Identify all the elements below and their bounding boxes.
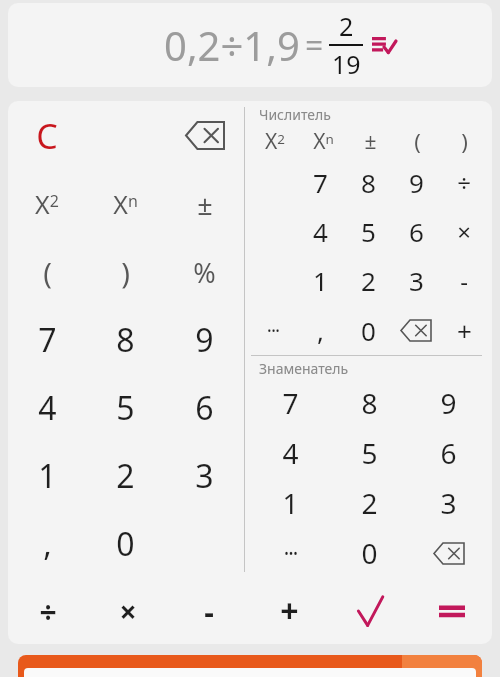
button[interactable]: 0 (330, 528, 409, 578)
button[interactable]: C (8, 101, 86, 170)
staticText: 4 (313, 214, 328, 249)
staticText: 2 (361, 263, 376, 298)
button[interactable]: 5 (344, 207, 392, 256)
button[interactable]: ( (394, 124, 441, 158)
button[interactable]: 4 (251, 428, 330, 478)
button[interactable]: + (249, 578, 330, 644)
button[interactable]: Equals (411, 578, 492, 644)
button[interactable]: 3 (392, 256, 440, 305)
staticText: 8 (361, 384, 378, 422)
button[interactable]: 9 (165, 306, 244, 374)
staticText: ( (43, 253, 52, 292)
button[interactable]: 9 (392, 158, 440, 207)
button[interactable]: × (88, 578, 168, 644)
button[interactable]: 6 (165, 374, 244, 442)
staticText: 3 (195, 454, 214, 498)
staticText: 0 (361, 534, 378, 572)
staticText: 5 (361, 214, 376, 249)
staticText: - (204, 591, 214, 632)
button[interactable]: ) (441, 124, 488, 158)
button[interactable]: Backspace (409, 528, 488, 578)
staticText: 7 (38, 318, 57, 362)
button[interactable]: 0 (86, 510, 165, 578)
staticText: 7 (313, 165, 328, 200)
staticText: ( (414, 126, 421, 156)
button[interactable]: + (440, 305, 488, 355)
staticText: 6 (409, 214, 424, 249)
staticText: X2 (265, 127, 285, 156)
button[interactable]: 8 (344, 158, 392, 207)
staticText: × (457, 215, 471, 248)
staticText: % (193, 254, 216, 291)
staticText: ••• (267, 323, 280, 338)
button[interactable]: 7 (251, 378, 330, 428)
button[interactable]: 1 (251, 478, 330, 528)
button[interactable]: 5 (86, 374, 165, 442)
button[interactable]: 7 (8, 306, 86, 374)
staticText: 5 (116, 386, 135, 430)
button[interactable]: ) (86, 238, 165, 306)
button[interactable]: ••• (251, 305, 296, 355)
button[interactable]: 7 (296, 158, 344, 207)
staticText: 3 (409, 263, 424, 298)
button[interactable]: ••• (251, 528, 330, 578)
button[interactable]: 3 (165, 442, 244, 510)
staticText: = (305, 23, 324, 67)
button[interactable]: 1 (296, 256, 344, 305)
button[interactable]: 4 (296, 207, 344, 256)
button[interactable]: 8 (330, 378, 409, 428)
button[interactable]: 9 (409, 378, 488, 428)
staticText: Числитель (259, 105, 331, 124)
button[interactable]: ± (347, 124, 394, 158)
staticText: 1 (313, 263, 328, 298)
button[interactable]: Show steps (369, 32, 399, 58)
staticText: ) (461, 126, 468, 156)
staticText: 9 (409, 165, 424, 200)
button[interactable]: Xn (299, 124, 347, 158)
button[interactable]: Backspace (392, 305, 440, 355)
button[interactable]: ÷ (440, 158, 488, 207)
button[interactable]: 6 (409, 428, 488, 478)
button[interactable]: Backspace (165, 101, 244, 170)
staticText: × (119, 591, 137, 632)
staticText: 8 (116, 318, 135, 362)
button[interactable]: , (8, 510, 86, 578)
button[interactable]: 3 (409, 478, 488, 528)
staticText: + (280, 589, 299, 633)
staticText: + (457, 313, 472, 348)
button[interactable]: X2 (251, 124, 299, 158)
button[interactable]: - (168, 578, 249, 644)
staticText: Знаменатель (259, 359, 349, 378)
button[interactable]: Xn (86, 170, 165, 238)
staticText: ± (197, 186, 213, 223)
staticText: Xn (113, 187, 138, 221)
button[interactable]: % (165, 238, 244, 306)
button[interactable]: ÷ (8, 578, 88, 644)
staticText: 2 (339, 9, 354, 43)
staticText: 0 (361, 313, 376, 348)
button[interactable]: - (440, 256, 488, 305)
button[interactable]: 0 (344, 305, 392, 355)
button[interactable]: ± (165, 170, 244, 238)
button[interactable]: , (296, 305, 344, 355)
staticText: 3 (440, 484, 457, 522)
button[interactable]: Square root (330, 578, 411, 644)
button[interactable]: 1 (8, 442, 86, 510)
button[interactable]: 8 (86, 306, 165, 374)
staticText: 9 (195, 318, 214, 362)
staticText: 19 (332, 47, 361, 81)
staticText: 8 (361, 165, 376, 200)
button[interactable]: 5 (330, 428, 409, 478)
button[interactable]: 2 (330, 478, 409, 528)
button[interactable]: 6 (392, 207, 440, 256)
staticText: 2 (361, 484, 378, 522)
button[interactable]: × (440, 207, 488, 256)
staticText: Xn (313, 127, 334, 156)
button[interactable]: 2 (86, 442, 165, 510)
staticText: 0,2÷1,9 (164, 18, 300, 72)
button[interactable]: 2 (344, 256, 392, 305)
button[interactable]: 4 (8, 374, 86, 442)
button[interactable]: X2 (8, 170, 86, 238)
button[interactable]: ( (8, 238, 86, 306)
staticText: 4 (282, 434, 299, 472)
